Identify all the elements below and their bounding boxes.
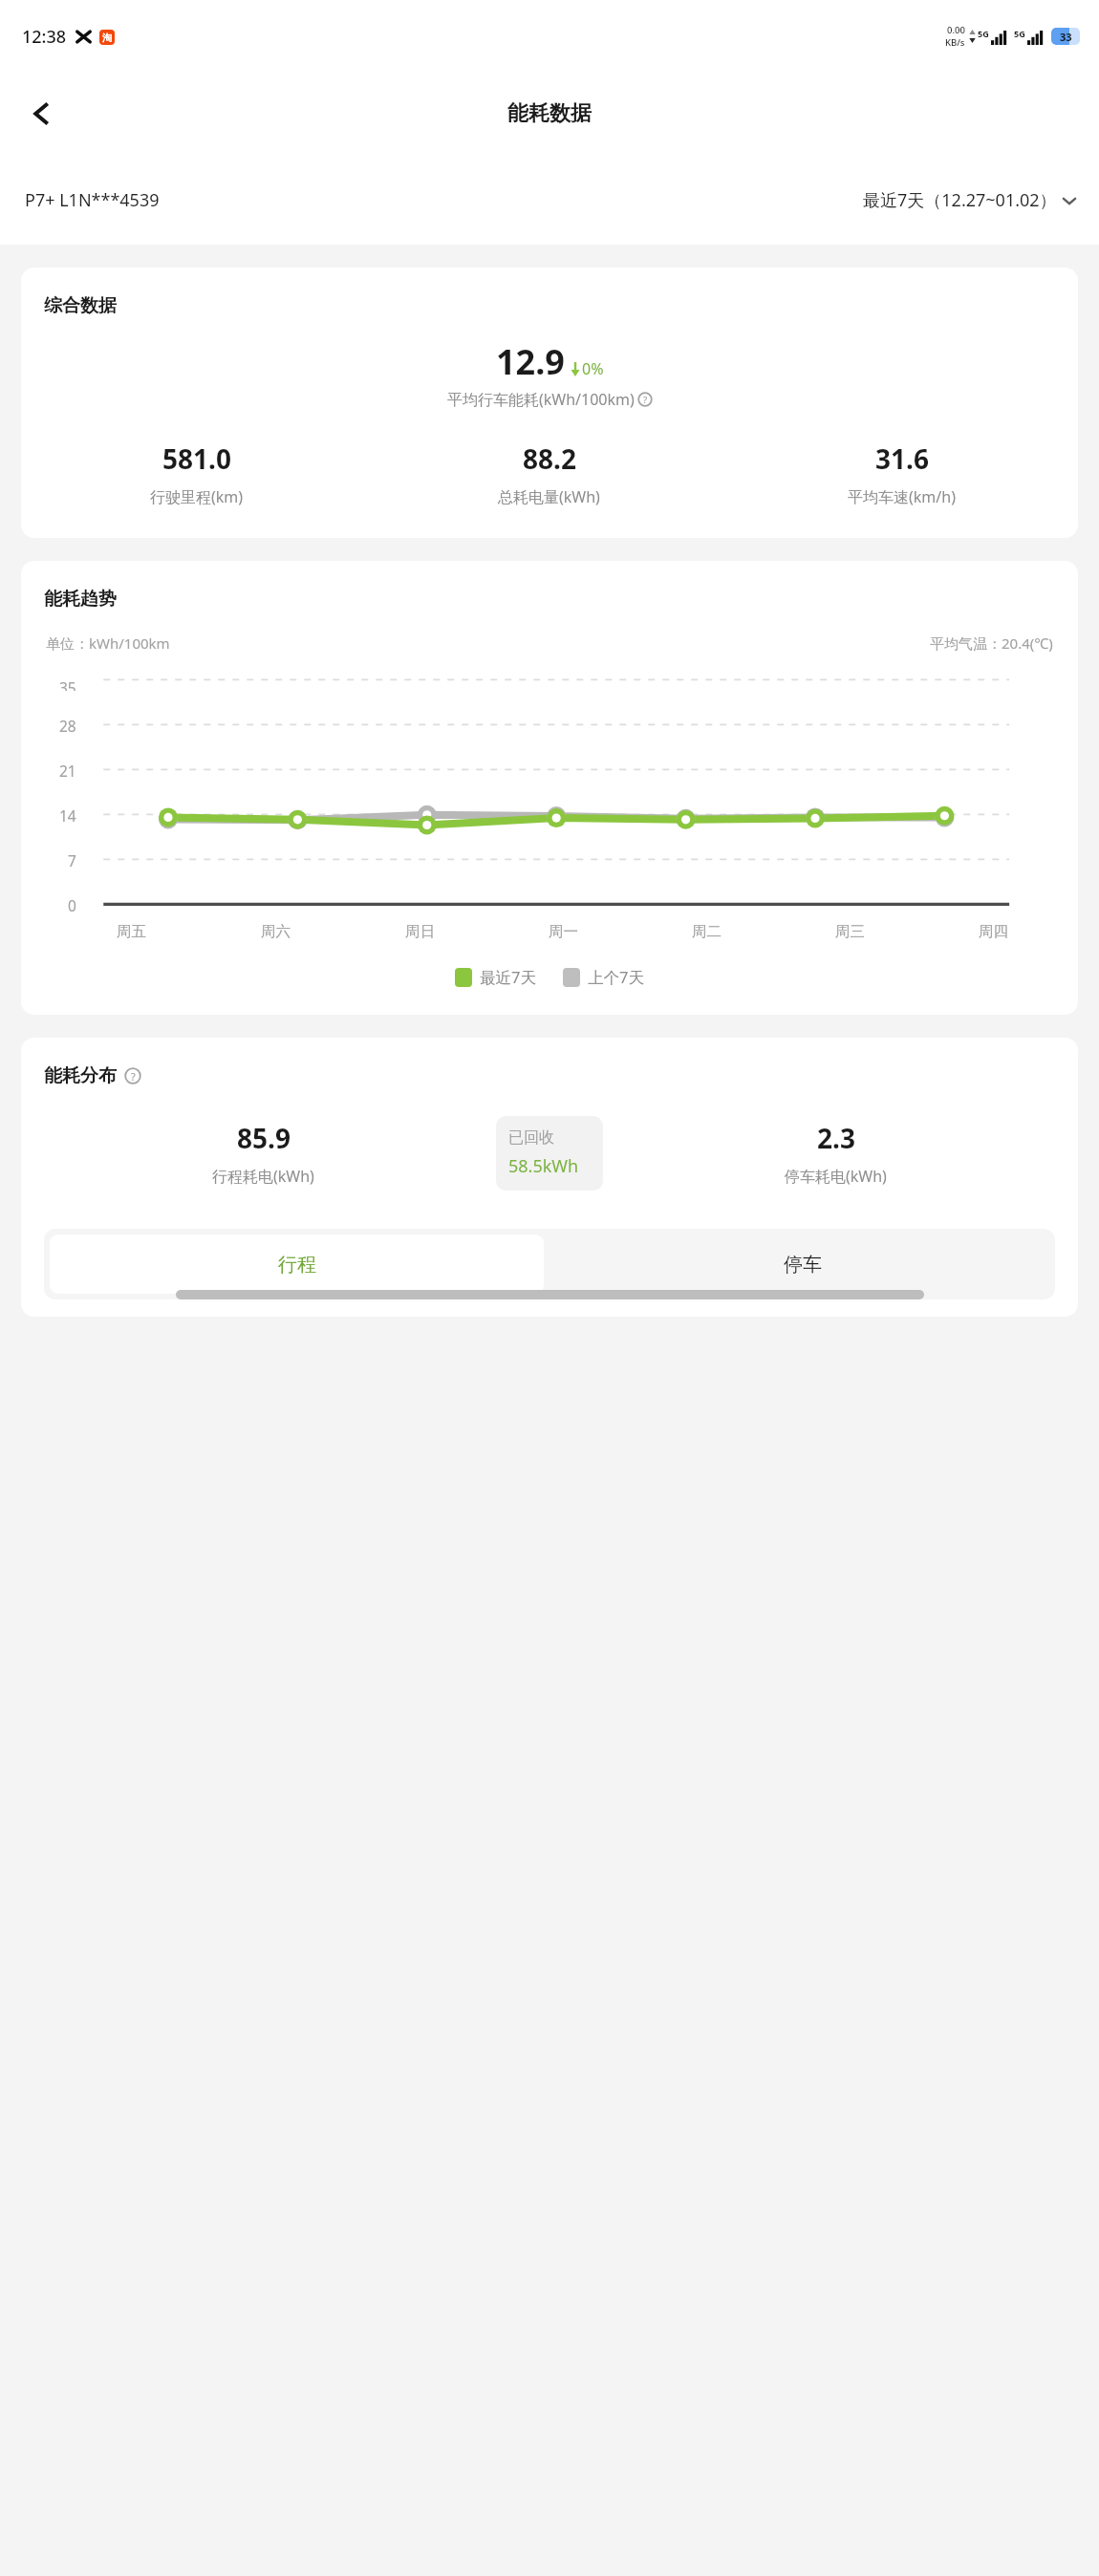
- staticText: 21: [59, 761, 76, 781]
- staticText: 35: [59, 677, 76, 691]
- staticText: 0: [68, 895, 76, 915]
- staticText: 上个7天: [588, 966, 644, 988]
- staticText: 2.3: [817, 1120, 855, 1156]
- staticText: 周五: [117, 922, 146, 941]
- staticText: 最近7天（12.27~01.02）: [863, 188, 1057, 212]
- staticText: 12:38: [22, 25, 67, 49]
- button[interactable]: 行程: [50, 1234, 544, 1294]
- staticText: 停车耗电(kWh): [785, 1166, 887, 1187]
- staticText: 行程: [278, 1253, 316, 1277]
- staticText: 85.9: [237, 1120, 291, 1156]
- button[interactable]: 停车: [549, 1229, 1055, 1299]
- staticText: 周二: [692, 922, 722, 941]
- staticText: 88.2: [523, 440, 576, 477]
- staticText: 平均气温：20.4(℃): [930, 633, 1053, 653]
- staticText: 周四: [979, 922, 1008, 941]
- staticText: 行程耗电(kWh): [212, 1166, 314, 1187]
- staticText: 平均车速(km/h): [848, 486, 956, 507]
- staticText: 周日: [405, 922, 435, 941]
- staticText: P7+ L1N***4539: [25, 188, 160, 212]
- staticText: 能耗分布: [44, 1064, 117, 1087]
- staticText: 平均行车能耗(kWh/100km): [447, 389, 635, 410]
- staticText: 14: [59, 805, 76, 826]
- staticText: 5G: [1014, 28, 1025, 39]
- button[interactable]: 返回: [15, 87, 69, 140]
- staticText: 33: [1060, 30, 1072, 44]
- staticText: 31.6: [875, 440, 929, 477]
- staticText: 周一: [549, 922, 578, 941]
- staticText: KB/s: [945, 36, 965, 49]
- staticText: 7: [68, 850, 76, 870]
- staticText: 周六: [261, 922, 291, 941]
- staticText: ?: [131, 1069, 136, 1084]
- staticText: 淘: [102, 32, 112, 44]
- staticText: 已回收: [508, 1128, 554, 1148]
- staticText: 5G: [978, 28, 989, 39]
- staticText: ?: [643, 394, 648, 406]
- staticText: 0.00: [947, 24, 965, 36]
- staticText: 周三: [835, 922, 865, 941]
- staticText: 最近7天: [480, 966, 536, 988]
- staticText: 58.5kWh: [508, 1154, 579, 1178]
- staticText: 12.9: [496, 338, 565, 385]
- staticText: 总耗电量(kWh): [498, 486, 600, 507]
- staticText: 综合数据: [44, 294, 117, 317]
- staticText: 停车: [784, 1253, 822, 1277]
- staticText: 581.0: [162, 440, 231, 477]
- button[interactable]: 最近7天（12.27~01.02）: [863, 188, 1078, 212]
- button[interactable]: P7+ L1N***4539: [25, 188, 160, 212]
- staticText: 28: [59, 716, 76, 736]
- staticText: 能耗趋势: [44, 588, 117, 611]
- staticText: 能耗数据: [507, 100, 592, 127]
- staticText: 0%: [582, 358, 604, 379]
- staticText: 行驶里程(km): [150, 486, 244, 507]
- staticText: 单位：kWh/100km: [46, 633, 170, 653]
